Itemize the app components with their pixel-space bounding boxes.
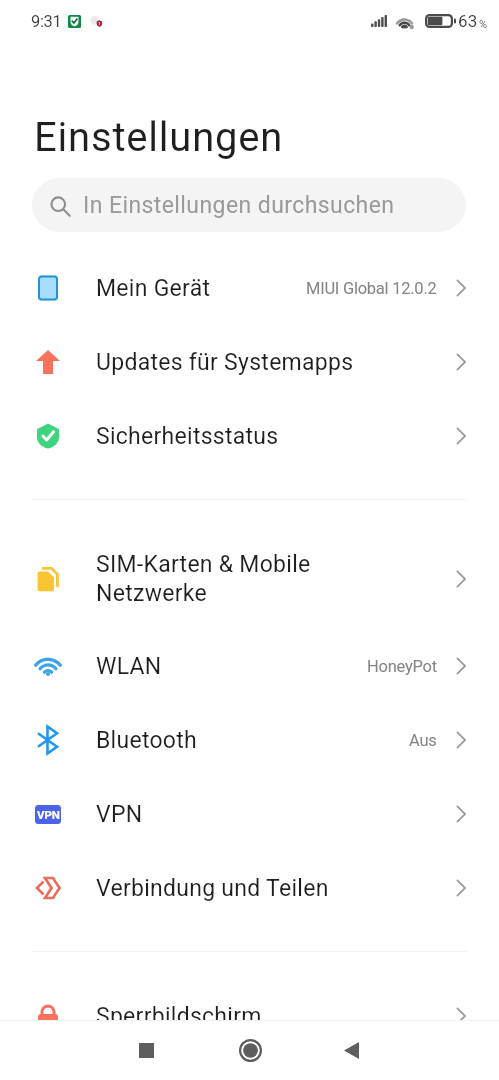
button[interactable]: Updates für Systemapps: [0, 325, 499, 399]
staticText: Aus: [409, 731, 437, 750]
staticText: %: [479, 18, 488, 31]
button[interactable]: Back: [327, 1026, 375, 1074]
staticText: 63: [458, 11, 478, 31]
button[interactable]: Mein Gerät: [0, 251, 499, 325]
staticText: HoneyPot: [367, 657, 437, 676]
staticText: 9:31: [31, 12, 62, 31]
staticText: Mein Gerät: [96, 275, 211, 302]
staticText: VPN: [37, 808, 60, 821]
button[interactable]: Bluetooth: [0, 703, 499, 777]
button[interactable]: VPN: [0, 777, 499, 851]
staticText: Einstellungen: [34, 114, 284, 161]
staticText: MIUI Global 12.0.2: [306, 279, 437, 298]
button[interactable]: Sicherheitsstatus: [0, 399, 499, 473]
staticText: Bluetooth: [96, 727, 198, 754]
button[interactable]: Recent apps: [122, 1026, 170, 1074]
button[interactable]: SIM-Karten & Mobile Netzwerke: [0, 528, 499, 629]
staticText: SIM-Karten & Mobile Netzwerke: [96, 551, 328, 607]
staticText: WLAN: [96, 653, 162, 680]
staticText: Verbindung und Teilen: [96, 875, 329, 902]
staticText: Sicherheitsstatus: [96, 423, 279, 450]
staticText: Updates für Systemapps: [96, 349, 354, 376]
button[interactable]: Sperrbildschirm: [0, 979, 499, 1053]
staticText: VPN: [96, 801, 143, 828]
staticText: In Einstellungen durchsuchen: [83, 192, 395, 219]
staticText: Sperrbildschirm: [96, 1003, 262, 1030]
button[interactable]: WLAN: [0, 629, 499, 703]
button[interactable]: In Einstellungen durchsuchen: [32, 178, 466, 232]
button[interactable]: Verbindung und Teilen: [0, 851, 499, 925]
button[interactable]: Home: [226, 1026, 274, 1074]
